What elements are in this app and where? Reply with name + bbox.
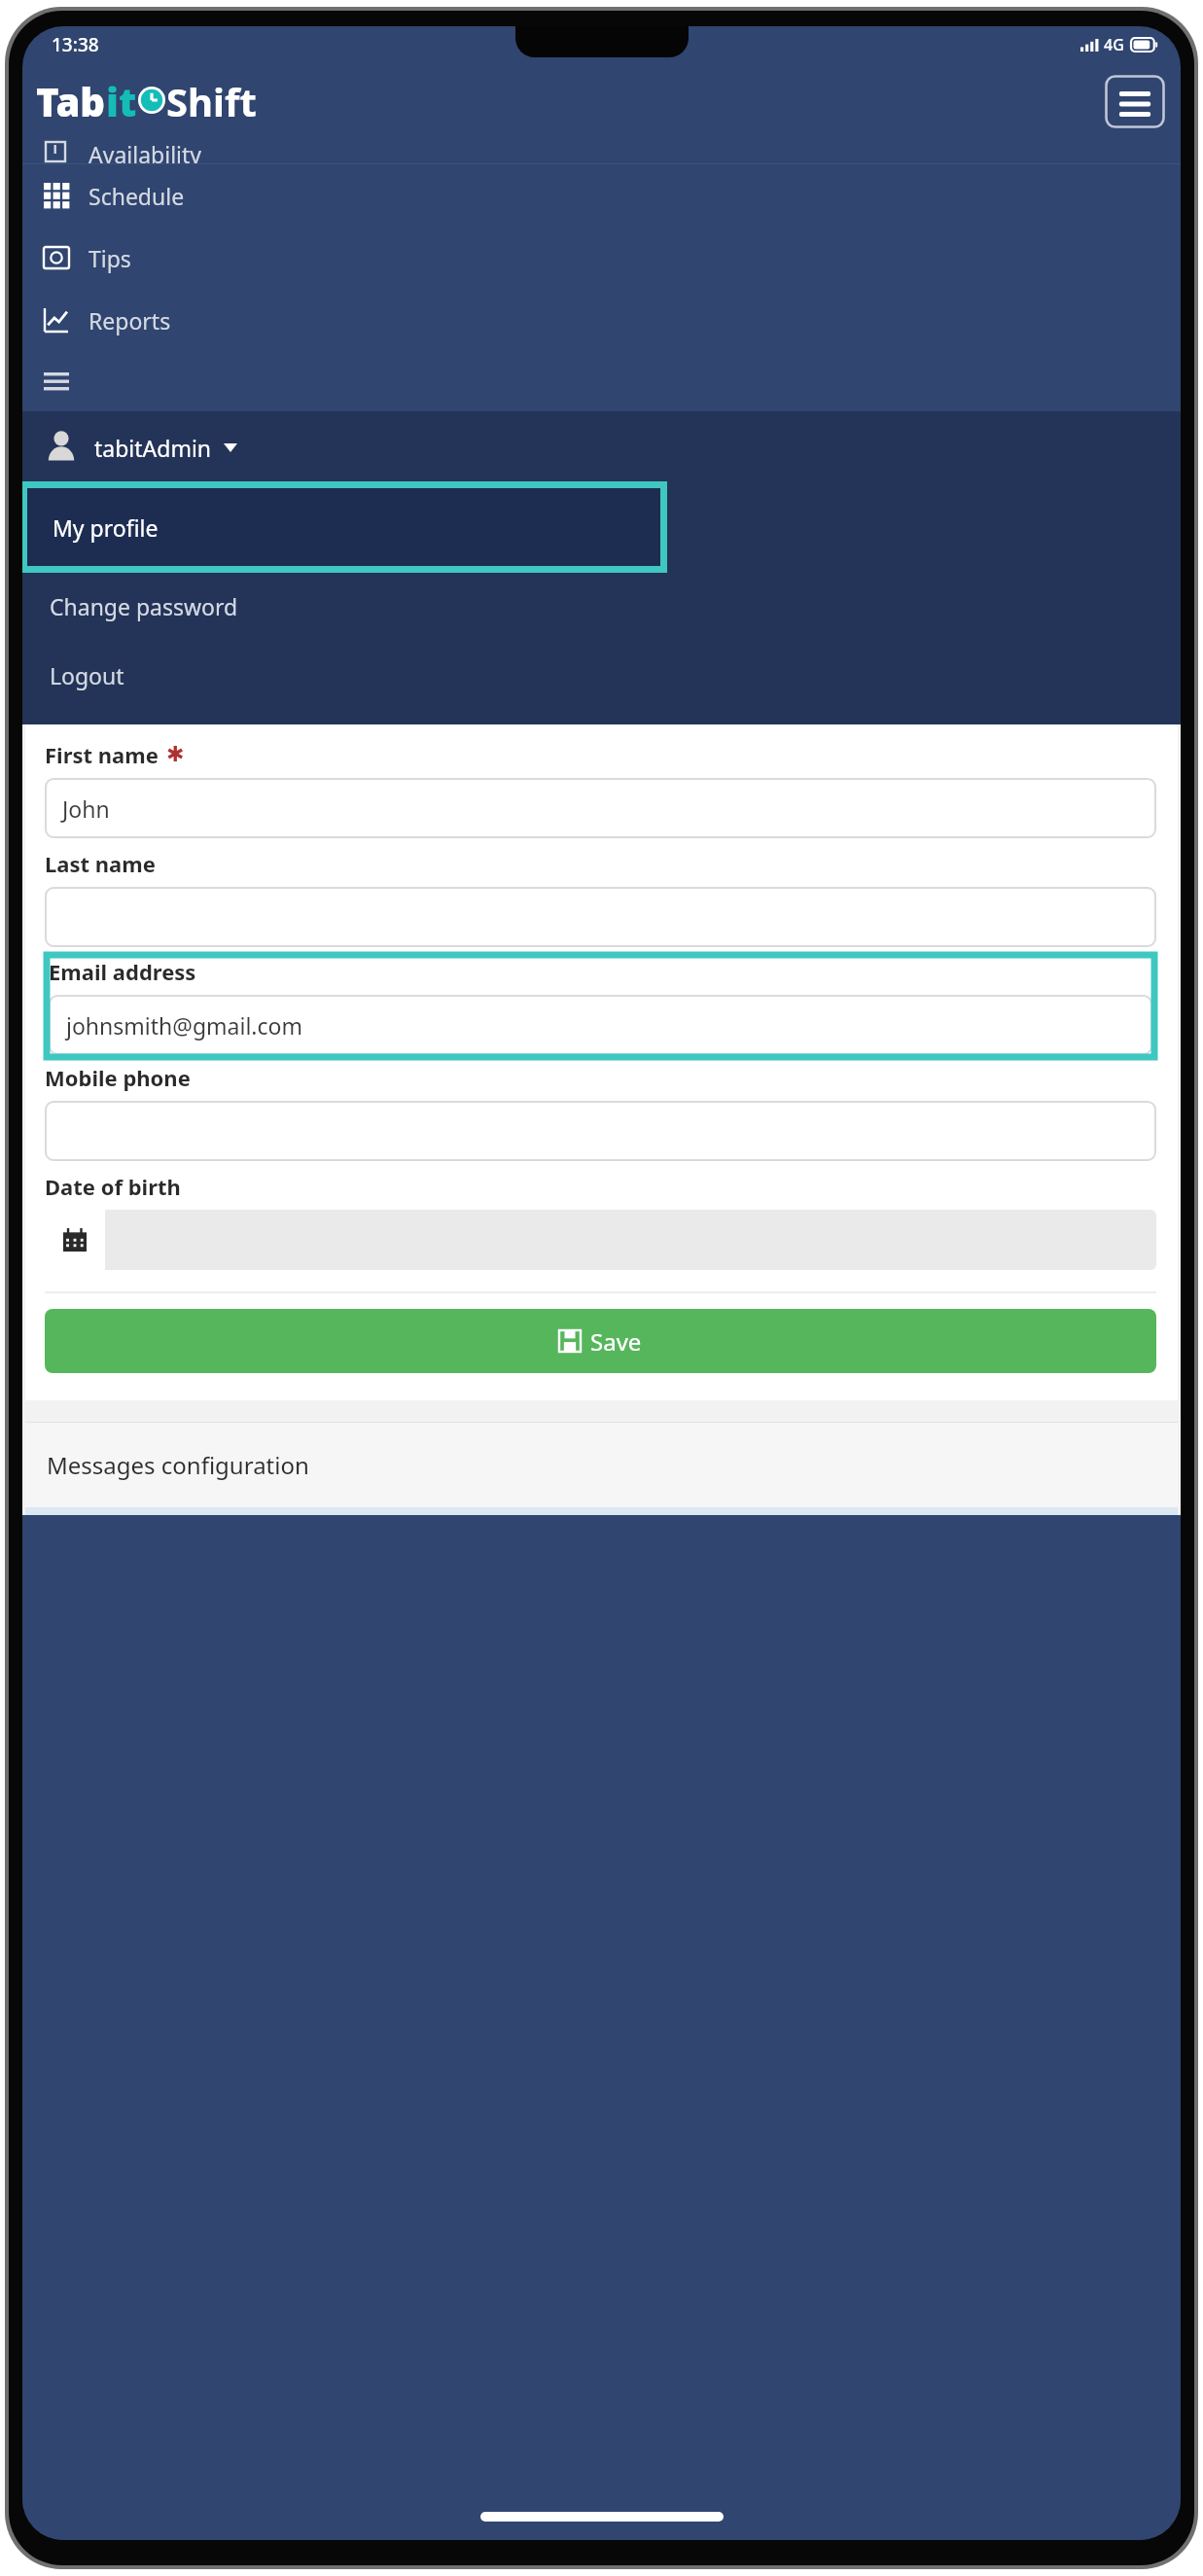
staticText: Availability xyxy=(88,139,202,164)
button[interactable]: My profile xyxy=(25,486,662,568)
staticText: 4G xyxy=(1104,34,1124,55)
button[interactable]: Logout xyxy=(22,641,1181,709)
button[interactable]: More xyxy=(22,351,1181,411)
staticText: Messages configuration xyxy=(47,1449,309,1481)
button[interactable]: John xyxy=(45,778,1156,838)
button[interactable]: Availability xyxy=(22,139,1181,164)
button[interactable] xyxy=(45,887,1156,947)
staticText: Schedule xyxy=(88,181,185,211)
button[interactable]: johnsmith@gmail.com xyxy=(49,995,1152,1055)
button[interactable]: Menu xyxy=(1105,75,1165,128)
staticText: ✱ xyxy=(166,742,185,767)
staticText: Mobile phone xyxy=(45,1063,191,1092)
staticText: John xyxy=(62,794,110,824)
staticText: Tips xyxy=(88,243,131,273)
button[interactable]: Reports xyxy=(22,289,1181,351)
button[interactable]: Save xyxy=(45,1309,1156,1373)
button[interactable]: Change password xyxy=(22,571,1181,641)
staticText: Email address xyxy=(49,957,196,986)
staticText: Logout xyxy=(50,660,124,690)
staticText: Reports xyxy=(88,305,171,335)
staticText: My profile xyxy=(53,512,159,543)
staticText: it xyxy=(106,75,137,127)
staticText: Save xyxy=(590,1325,642,1358)
staticText: Date of birth xyxy=(45,1172,181,1201)
staticText: Tab xyxy=(36,75,106,127)
staticText: johnsmith@gmail.com xyxy=(66,1010,302,1041)
button[interactable] xyxy=(45,1210,1156,1270)
staticText: tabitAdmin xyxy=(94,433,212,463)
staticText: 13:38 xyxy=(52,32,99,57)
button[interactable]: Schedule xyxy=(22,164,1181,227)
staticText: Shift xyxy=(166,75,257,127)
staticText: Last name xyxy=(45,849,156,878)
button[interactable] xyxy=(45,1101,1156,1161)
button[interactable]: tabitAdmin xyxy=(22,411,1181,483)
staticText: Change password xyxy=(50,591,238,621)
button[interactable]: Messages configuration xyxy=(25,1422,1178,1507)
button[interactable]: Tips xyxy=(22,227,1181,289)
staticText: First name xyxy=(45,740,159,769)
